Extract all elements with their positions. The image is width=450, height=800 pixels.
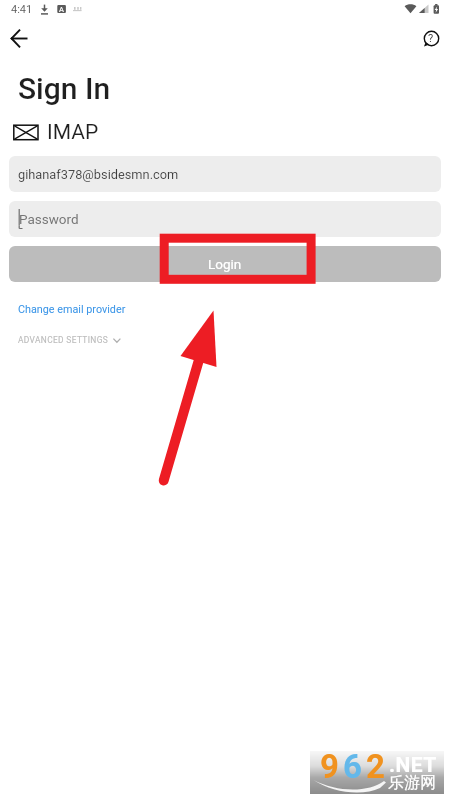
staticText: Sign In <box>18 71 111 106</box>
staticText: 乐游网 <box>388 773 436 793</box>
button[interactable]: Help <box>418 25 444 51</box>
staticText: A <box>59 5 64 14</box>
staticText: Login <box>208 256 242 272</box>
staticText: 2 <box>366 747 389 786</box>
staticText: 9 <box>320 747 343 786</box>
button[interactable]: Back <box>3 22 35 54</box>
staticText: Password <box>19 211 79 227</box>
button[interactable]: ADVANCED SETTINGS <box>18 335 121 345</box>
staticText: ADVANCED SETTINGS <box>18 335 109 345</box>
button[interactable]: Password <box>9 201 441 237</box>
staticText: Change email provider <box>18 303 126 316</box>
staticText: IMAP <box>47 120 99 144</box>
staticText: 4:41 <box>11 3 33 16</box>
button[interactable]: Change email provider <box>18 303 126 316</box>
staticText: gihanaf378@bsidesmn.com <box>18 167 179 182</box>
button[interactable]: Login <box>9 246 441 282</box>
staticText: 6 <box>343 747 366 786</box>
staticText: ? <box>428 32 434 45</box>
staticText: .NET <box>389 753 437 778</box>
button[interactable]: gihanaf378@bsidesmn.com <box>9 156 441 192</box>
